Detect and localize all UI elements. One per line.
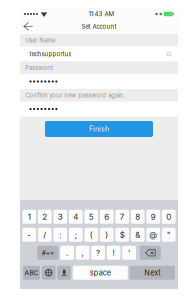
button[interactable]: 9 (146, 210, 160, 224)
button[interactable]: Delete (140, 246, 161, 260)
button[interactable]: , (76, 246, 89, 260)
button[interactable]: 7 (115, 210, 129, 224)
button[interactable]: : (53, 228, 67, 242)
button[interactable]: $ (115, 228, 129, 242)
button[interactable]: #+= (37, 246, 58, 260)
button[interactable]: space (73, 266, 128, 280)
staticText: 4 (73, 212, 78, 222)
button[interactable]: ' (122, 246, 136, 260)
staticText: . (66, 248, 68, 258)
button[interactable]: " (162, 228, 176, 242)
button[interactable]: ) (100, 228, 114, 242)
staticText: : (59, 230, 61, 240)
button[interactable]: @ (146, 228, 160, 242)
staticText: 0 (166, 212, 171, 222)
button[interactable]: - (22, 228, 36, 242)
staticText: Next (144, 268, 160, 277)
staticText: 5 (89, 212, 94, 222)
button[interactable]: 4 (69, 210, 83, 224)
staticText: Finish (89, 125, 109, 133)
staticText: ? (96, 248, 100, 258)
staticText: / (43, 230, 46, 240)
staticText: " (167, 230, 171, 240)
button[interactable]: & (131, 228, 145, 242)
staticText: #+= (42, 249, 54, 257)
staticText: Confirm your new password again. (25, 92, 125, 99)
staticText: & (135, 230, 140, 240)
button[interactable]: ABC (23, 266, 40, 280)
button[interactable]: Finish (45, 121, 153, 137)
staticText: User Name (25, 37, 55, 44)
staticText: ) (105, 230, 108, 240)
button[interactable]: 6 (100, 210, 114, 224)
button[interactable]: / (38, 228, 52, 242)
button[interactable]: ? (91, 246, 105, 260)
staticText: ABC (25, 269, 39, 277)
button[interactable]: 2 (38, 210, 52, 224)
staticText: ( (90, 230, 93, 240)
button[interactable]: 1 (22, 210, 36, 224)
button[interactable]: Next (130, 266, 175, 280)
button[interactable]: Back (20, 20, 36, 33)
staticText: 1 (28, 212, 31, 222)
button[interactable]: ; (69, 228, 83, 242)
staticText: @ (149, 230, 157, 240)
staticText: 11:43 AM (88, 10, 114, 18)
button[interactable]: 3 (53, 210, 67, 224)
staticText: Set Account (81, 23, 116, 30)
staticText: 3 (58, 212, 63, 222)
button[interactable]: . (60, 246, 74, 260)
staticText: space (90, 268, 111, 277)
staticText: ' (128, 248, 130, 258)
button[interactable]: 0 (162, 210, 176, 224)
staticText: , (82, 248, 84, 258)
staticText: 6 (104, 212, 109, 222)
staticText: ; (75, 230, 77, 240)
staticText: - (27, 230, 31, 240)
staticText: Password (25, 64, 53, 71)
staticText: ! (113, 248, 115, 258)
staticText: techsupportus (29, 50, 71, 58)
button[interactable]: 8 (131, 210, 145, 224)
button[interactable]: Dictation (57, 266, 71, 280)
staticText: 2 (42, 212, 47, 222)
button[interactable]: 5 (84, 210, 98, 224)
staticText: 9 (151, 212, 156, 222)
staticText: 7 (120, 212, 125, 222)
button[interactable]: ( (84, 228, 98, 242)
staticText: 8 (135, 212, 140, 222)
staticText: $ (120, 230, 125, 240)
button[interactable]: Next keyboard (42, 266, 56, 280)
button[interactable]: ! (107, 246, 120, 260)
